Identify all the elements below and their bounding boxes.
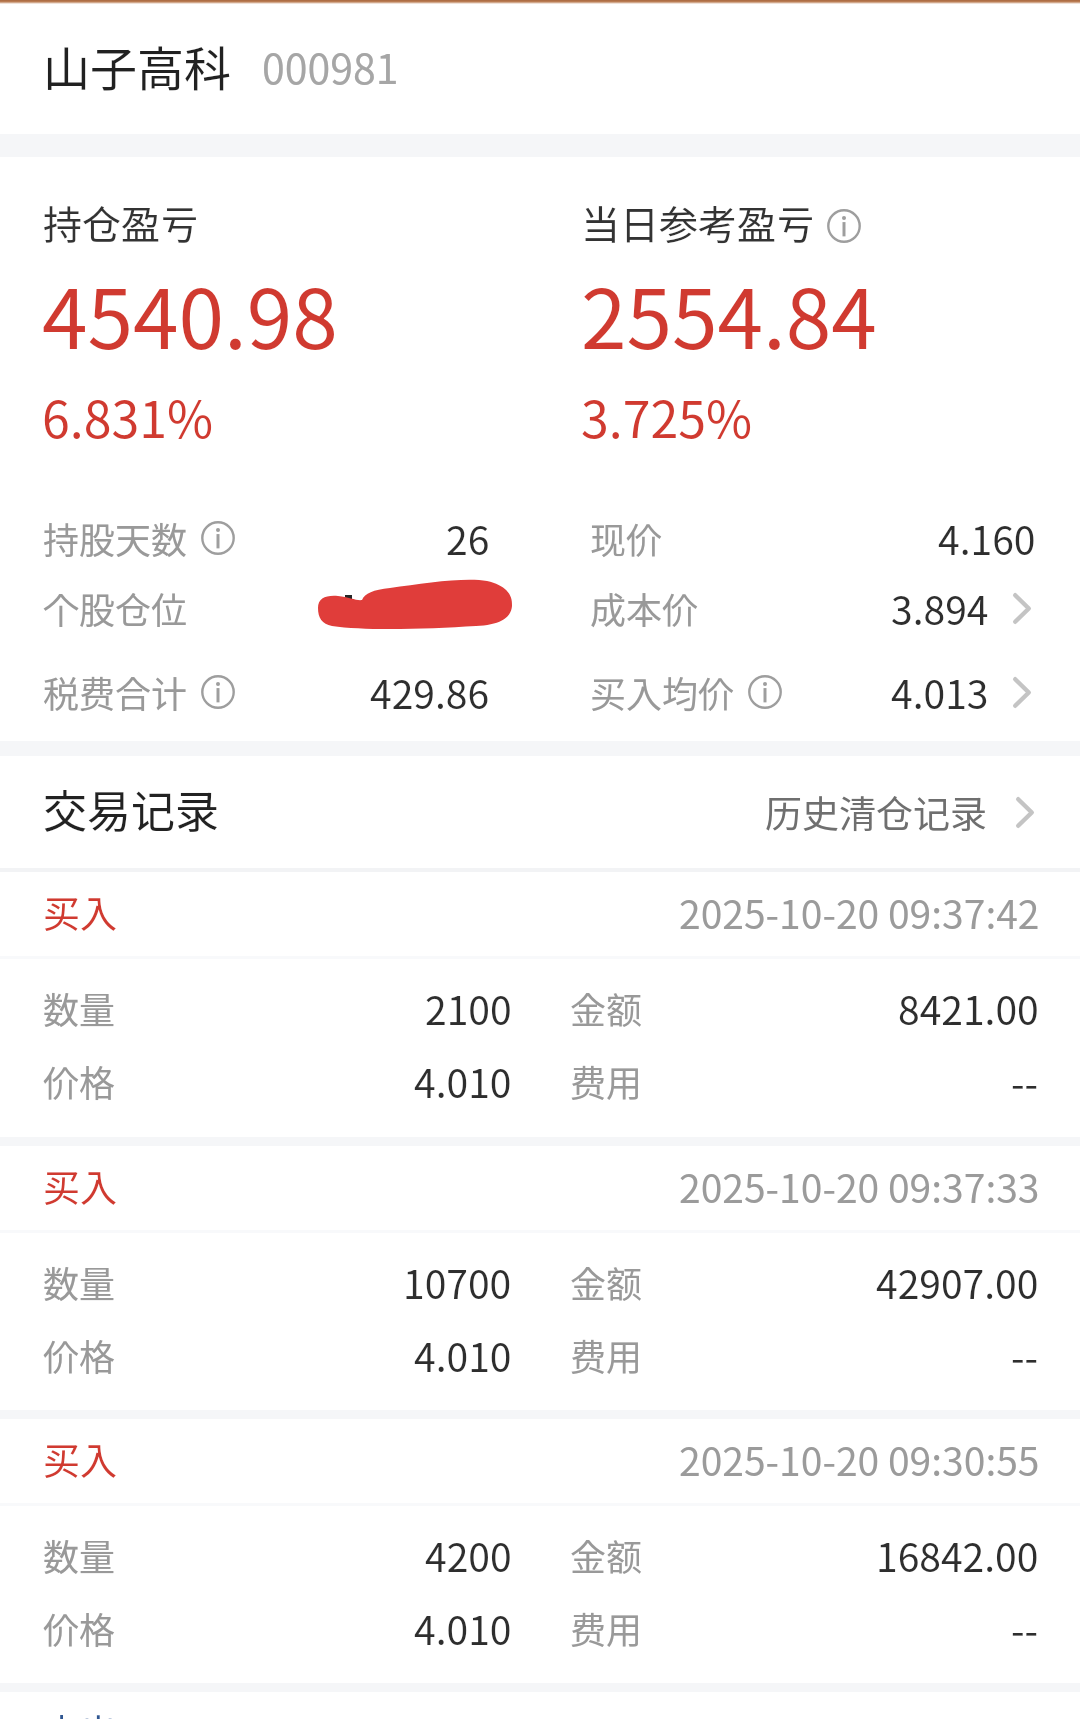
staticText: 历史清仓记录: [765, 785, 987, 839]
staticText: 现价: [590, 512, 663, 564]
staticText: 买入: [43, 885, 117, 939]
staticText: 3.894: [891, 580, 989, 636]
staticText: 000981: [262, 36, 399, 95]
staticText: 税费合计: [43, 666, 188, 718]
staticText: 当日参考盈亏: [581, 194, 816, 250]
staticText: 山子高科: [43, 31, 231, 99]
button[interactable]: 买入: [0, 870, 1080, 954]
button[interactable]: 买入: [0, 1417, 1080, 1501]
staticText: 卖出: [43, 1704, 117, 1719]
staticText: 金额: [570, 1529, 643, 1581]
button[interactable]: 卖出: [0, 1704, 1080, 1719]
staticText: 价格: [43, 1329, 116, 1381]
staticText: 429.86: [370, 664, 490, 720]
button[interactable]: 买入均价: [540, 657, 1080, 727]
staticText: 2554.84: [581, 254, 877, 373]
staticText: 42907.00: [876, 1254, 1039, 1310]
button[interactable]: 成本价: [540, 573, 1080, 643]
staticText: 个股仓位: [43, 582, 188, 634]
staticText: 数量: [43, 1256, 116, 1308]
staticText: 成本价: [590, 582, 699, 634]
staticText: 金额: [570, 1256, 643, 1308]
staticText: 6.831%: [42, 380, 213, 452]
staticText: 4.160: [938, 510, 1036, 566]
staticText: --: [1011, 1053, 1039, 1109]
staticText: 4.010: [414, 1600, 512, 1656]
button[interactable]: 买入: [0, 1144, 1080, 1228]
staticText: 8421.00: [898, 980, 1039, 1036]
staticText: 2025-10-20 09:30:55: [679, 1431, 1040, 1487]
staticText: 10700: [403, 1254, 512, 1310]
staticText: 交易记录: [43, 777, 219, 841]
staticText: 费用: [570, 1602, 643, 1654]
button[interactable]: More information: [201, 521, 235, 555]
staticText: 费用: [570, 1329, 643, 1381]
staticText: 买入均价: [590, 666, 735, 718]
staticText: 数量: [43, 1529, 116, 1581]
button[interactable]: Reference profit info: [827, 209, 861, 243]
staticText: 4.013: [891, 664, 989, 720]
staticText: 2100: [425, 980, 512, 1036]
staticText: 4200: [425, 1527, 512, 1583]
staticText: 金额: [570, 982, 643, 1034]
staticText: 价格: [43, 1055, 116, 1107]
button[interactable]: More information: [748, 675, 782, 709]
staticText: 4.010: [414, 1053, 512, 1109]
staticText: --: [1011, 1327, 1039, 1383]
staticText: 持仓盈亏: [43, 194, 200, 250]
staticText: 3.725%: [581, 380, 752, 452]
staticText: 买入: [43, 1432, 117, 1486]
staticText: 16842.00: [876, 1527, 1039, 1583]
staticText: 2025-10-20 09:37:33: [679, 1158, 1040, 1214]
staticText: 数量: [43, 982, 116, 1034]
staticText: 买入: [43, 1159, 117, 1213]
staticText: 费用: [570, 1055, 643, 1107]
staticText: 价格: [43, 1602, 116, 1654]
staticText: 4.010: [414, 1327, 512, 1383]
staticText: --: [1011, 1600, 1039, 1656]
button[interactable]: 历史清仓记录: [765, 785, 1034, 839]
staticText: 4540.98: [42, 254, 338, 373]
button[interactable]: More information: [201, 675, 235, 709]
staticText: 26: [446, 510, 490, 566]
staticText: 2025-10-20 09:37:42: [679, 884, 1040, 940]
staticText: 持股天数: [43, 512, 188, 564]
